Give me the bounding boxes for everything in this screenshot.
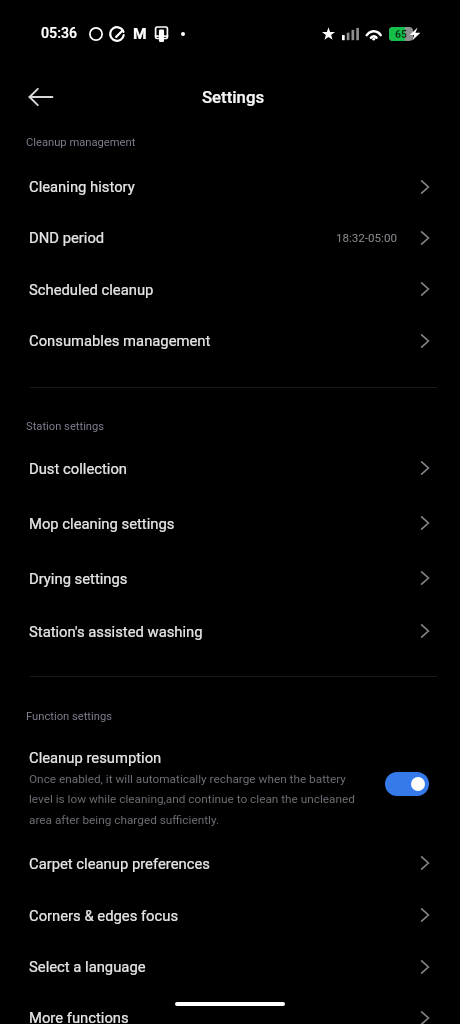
staticText: Station settings: [26, 420, 105, 433]
staticText: More functions: [29, 1009, 129, 1024]
button[interactable]: Drying settings: [0, 551, 460, 605]
button[interactable]: Consumables management: [0, 315, 460, 366]
staticText: DND period: [29, 229, 105, 246]
staticText: Cleanup resumption: [29, 749, 162, 766]
button[interactable]: Corners & edges focus: [0, 889, 460, 941]
button[interactable]: Back: [17, 73, 65, 121]
button[interactable]: Mop cleaning settings: [0, 496, 460, 550]
button[interactable]: Cleaning history: [0, 161, 460, 212]
button[interactable]: Toggle cleanup resumption: [385, 772, 429, 796]
staticText: Carpet cleanup preferences: [29, 855, 210, 872]
staticText: Scheduled cleanup: [29, 281, 154, 298]
button[interactable]: Scheduled cleanup: [0, 263, 460, 315]
staticText: Settings: [3, 87, 460, 107]
button[interactable]: Dust collection: [0, 441, 460, 495]
staticText: Cleanup management: [26, 136, 136, 149]
staticText: Function settings: [26, 710, 112, 723]
staticText: Mop cleaning settings: [29, 515, 175, 532]
staticText: Drying settings: [29, 570, 128, 587]
button[interactable]: More functions: [0, 992, 460, 1024]
staticText: Corners & edges focus: [29, 907, 179, 924]
button[interactable]: Carpet cleanup preferences: [0, 837, 460, 889]
button[interactable]: DND period: [0, 212, 460, 263]
staticText: Cleaning history: [29, 178, 135, 195]
staticText: Consumables management: [29, 332, 211, 349]
staticText: Select a language: [29, 958, 146, 975]
staticText: Once enabled, it will automatically rech…: [29, 772, 357, 827]
staticText: Dust collection: [29, 460, 128, 477]
button[interactable]: Select a language: [0, 941, 460, 992]
staticText: 18:32-05:00: [336, 231, 397, 245]
button[interactable]: Station's assisted washing: [0, 605, 460, 657]
staticText: 65: [395, 28, 408, 40]
staticText: 05:36: [41, 25, 78, 42]
staticText: M: [133, 25, 147, 43]
button[interactable]: Cleanup resumption: [0, 740, 460, 840]
staticText: Station's assisted washing: [29, 623, 203, 640]
